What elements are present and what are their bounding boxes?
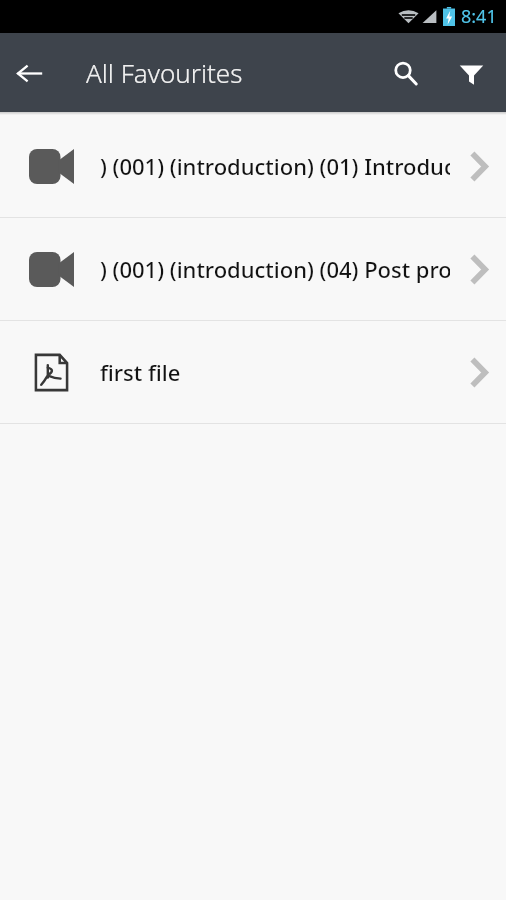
staticText: 8:41 (461, 4, 497, 29)
button[interactable]: ) (001) (introduction) (04) Post product… (0, 218, 506, 320)
staticText: ) (001) (introduction) (04) Post product… (100, 254, 450, 284)
button[interactable]: first file (0, 321, 506, 423)
button[interactable]: ) (001) (introduction) (01) Introduction… (0, 115, 506, 217)
button[interactable]: Search (376, 44, 434, 102)
staticText: All Favourites (86, 55, 376, 90)
button[interactable]: Back (0, 44, 58, 102)
staticText: first file (100, 357, 450, 387)
button[interactable]: Filter (442, 44, 500, 102)
staticText: ) (001) (introduction) (01) Introduction… (100, 151, 450, 181)
